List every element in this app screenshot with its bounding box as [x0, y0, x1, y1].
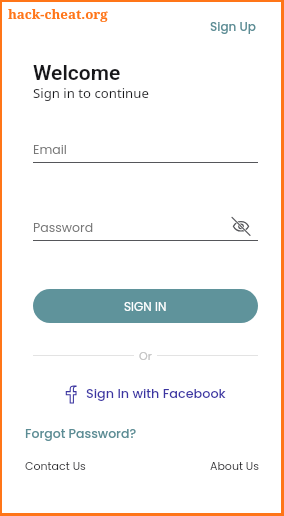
staticText: Forgot Password?: [25, 425, 137, 442]
button[interactable]: About Us: [210, 458, 260, 473]
staticText: About Us: [210, 458, 260, 473]
staticText: Sign Up: [210, 18, 256, 35]
staticText: Email: [33, 141, 67, 158]
button[interactable]: Show password: [232, 217, 250, 235]
button[interactable]: Sign In with Facebook: [33, 383, 258, 405]
button[interactable]: Contact Us: [25, 458, 86, 473]
button[interactable]: SIGN IN: [33, 289, 258, 323]
staticText: Sign In with Facebook: [86, 385, 226, 403]
staticText: SIGN IN: [124, 298, 167, 315]
staticText: Contact Us: [25, 458, 86, 473]
button[interactable]: Forgot Password?: [25, 425, 137, 442]
staticText: Or: [139, 348, 152, 363]
staticText: Welcome: [33, 61, 121, 86]
button[interactable]: Sign Up: [210, 18, 256, 35]
staticText: Sign in to continue: [33, 84, 149, 102]
staticText: hack-cheat.org: [8, 5, 108, 23]
staticText: Password: [33, 219, 94, 236]
